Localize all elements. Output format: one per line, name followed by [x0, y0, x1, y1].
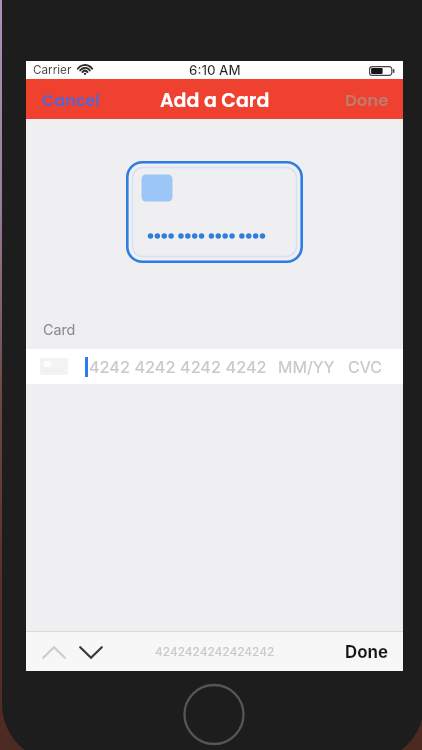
button[interactable]: Previous field — [38, 636, 70, 668]
button[interactable]: Done — [331, 632, 403, 671]
button[interactable]: Next field — [75, 636, 107, 668]
staticText: Card — [43, 321, 76, 338]
button[interactable]: Done — [335, 79, 403, 119]
button[interactable]: 4242 4242 4242 4242 — [26, 349, 403, 384]
staticText: Done — [345, 89, 389, 112]
staticText: MM/YY — [278, 357, 335, 376]
staticText: 6:10 AM — [189, 62, 241, 78]
staticText: Carrier — [33, 63, 72, 77]
staticText: Add a Card — [160, 87, 270, 114]
staticText: 4242 4242 4242 4242 — [89, 357, 267, 377]
staticText: CVC — [348, 357, 382, 376]
staticText: 4242424242424242 — [155, 644, 275, 659]
button[interactable]: Cancel — [26, 79, 110, 119]
staticText: Cancel — [42, 89, 100, 111]
staticText: Done — [345, 642, 388, 662]
